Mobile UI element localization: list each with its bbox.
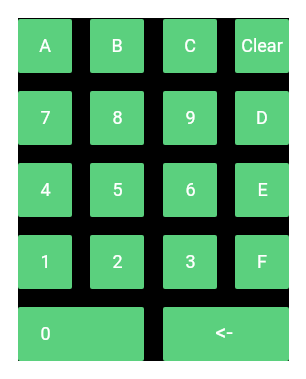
button[interactable]: A <box>18 19 72 73</box>
button[interactable]: 0 <box>18 307 144 361</box>
staticText: D <box>256 107 268 128</box>
staticText: Clear <box>241 35 283 56</box>
button[interactable]: 4 <box>18 163 72 217</box>
staticText: 6 <box>185 179 196 200</box>
staticText: B <box>111 35 123 56</box>
staticText: 7 <box>40 107 51 128</box>
staticText: F <box>257 251 267 272</box>
staticText: 3 <box>185 251 196 272</box>
staticText: 1 <box>40 251 51 272</box>
button[interactable]: Clear <box>235 19 289 73</box>
staticText: 4 <box>40 179 51 200</box>
staticText: E <box>257 179 268 200</box>
staticText: 5 <box>112 179 123 200</box>
staticText: <- <box>215 320 233 346</box>
button[interactable]: 9 <box>163 91 217 145</box>
staticText: 8 <box>112 107 123 128</box>
button[interactable]: <- <box>163 307 289 361</box>
button[interactable]: 2 <box>90 235 144 289</box>
button[interactable]: F <box>235 235 289 289</box>
button[interactable]: B <box>90 19 144 73</box>
button[interactable]: 3 <box>163 235 217 289</box>
button[interactable]: 1 <box>18 235 72 289</box>
staticText: 0 <box>40 323 51 344</box>
button[interactable]: 5 <box>90 163 144 217</box>
button[interactable]: 6 <box>163 163 217 217</box>
button[interactable]: E <box>235 163 289 217</box>
button[interactable]: D <box>235 91 289 145</box>
staticText: 2 <box>112 251 123 272</box>
staticText: A <box>39 35 51 56</box>
button[interactable]: 7 <box>18 91 72 145</box>
button[interactable]: 8 <box>90 91 144 145</box>
staticText: 9 <box>185 107 196 128</box>
staticText: C <box>184 35 196 56</box>
button[interactable]: C <box>163 19 217 73</box>
